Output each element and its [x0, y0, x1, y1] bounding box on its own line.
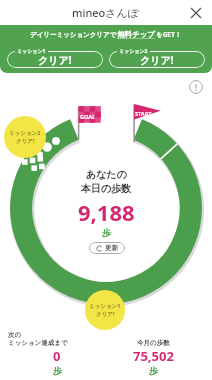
staticText: ミッション2	[119, 48, 148, 55]
staticText: 75,502	[133, 347, 174, 365]
staticText: クリア!	[38, 53, 72, 67]
staticText: mineoさんぽ	[72, 5, 140, 20]
button[interactable]: Close	[186, 3, 206, 23]
button[interactable]: ミッション1	[85, 290, 125, 330]
staticText: 本日の歩数	[81, 182, 132, 195]
staticText: 歩	[149, 365, 158, 376]
staticText: 次の	[8, 331, 22, 339]
staticText: クリア!	[96, 310, 115, 318]
staticText: START	[135, 110, 152, 117]
staticText: GOAL	[80, 113, 96, 120]
staticText: をGET！	[156, 30, 182, 39]
staticText: 今月の歩数	[137, 339, 170, 347]
staticText: クリア!	[16, 137, 35, 145]
staticText: 0	[53, 347, 61, 365]
button[interactable]: クリア!	[109, 51, 205, 68]
staticText: クリア!	[140, 53, 174, 67]
staticText: ミッション1	[17, 48, 46, 55]
staticText: ミッション達成まで	[8, 339, 68, 347]
staticText: あなたの	[86, 168, 127, 181]
staticText: 更新	[105, 244, 118, 252]
staticText: ミッション2	[9, 129, 41, 137]
staticText: 無料チップ	[117, 30, 156, 39]
staticText: 9,188	[78, 197, 135, 227]
button[interactable]: クリア!	[7, 51, 103, 68]
button[interactable]: ミッション2	[4, 116, 46, 158]
staticText: デイリーミッションクリアで	[30, 31, 117, 39]
staticText: 歩	[102, 227, 111, 238]
staticText: ミッション1	[89, 302, 121, 310]
staticText: 歩	[53, 365, 62, 376]
button[interactable]: Information	[188, 79, 204, 95]
button[interactable]: 更新	[89, 242, 125, 254]
